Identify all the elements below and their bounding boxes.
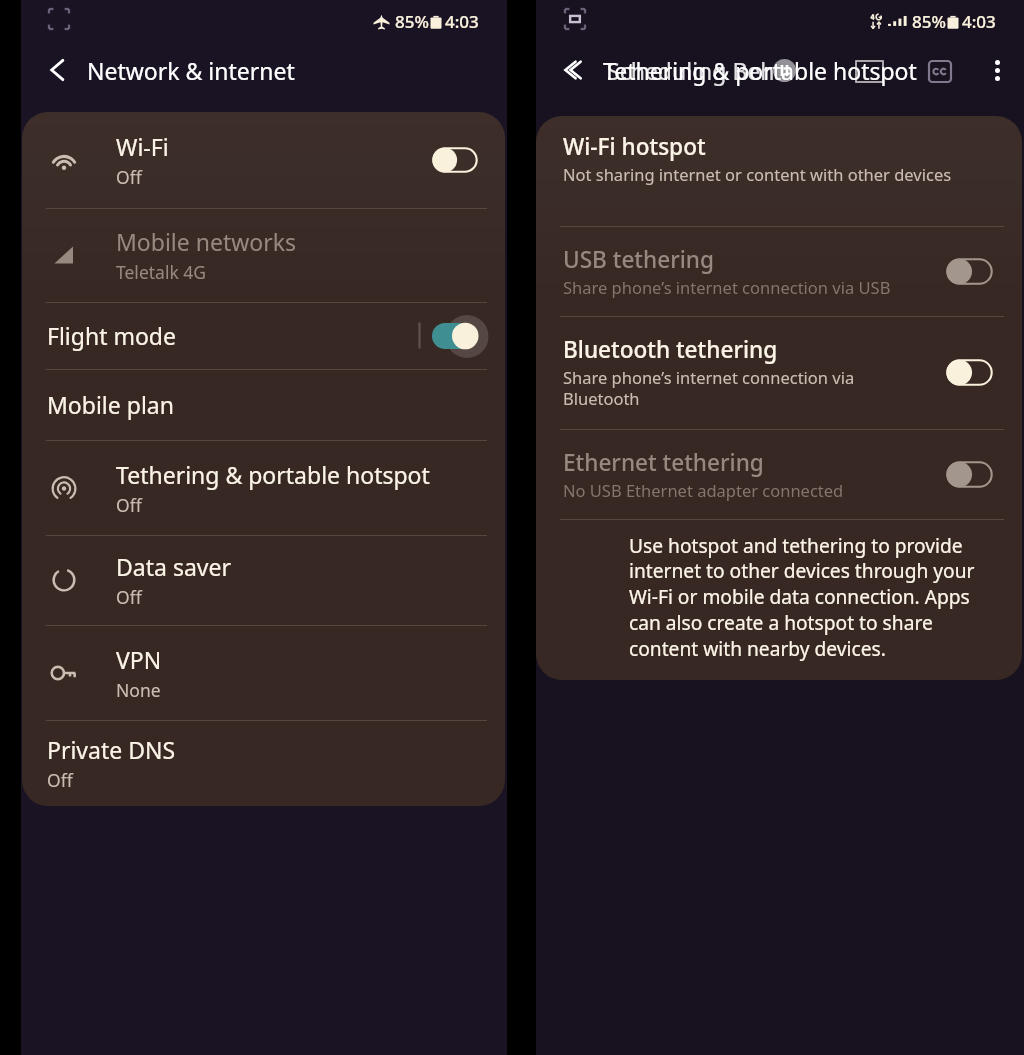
button[interactable]: Captions [928,60,952,83]
staticText: Wi-Fi [116,131,169,162]
staticText: Tethering & portable hotspot [603,55,917,86]
staticText: Flight mode [47,320,176,351]
button[interactable]: Back [550,48,594,92]
button[interactable]: Flight mode [22,302,505,369]
button[interactable]: Wi-Fi hotspot [536,116,1022,226]
staticText: Private DNS [47,734,176,765]
staticText: 4:03 [962,10,996,33]
button[interactable]: Ethernet tethering [536,429,1022,519]
staticText: Teletalk 4G [116,260,207,284]
button[interactable]: Back [35,48,79,92]
staticText: Off [116,493,142,517]
staticText: Mobile networks [116,226,297,257]
button[interactable]: Ethernet tethering switch [941,429,1001,519]
staticText: Bluetooth tethering [563,334,778,365]
button[interactable]: Pause [773,59,796,82]
staticText: Use hotspot and tethering to provide int… [629,532,975,662]
staticText: Share phone’s internet connection via Bl… [563,366,855,410]
staticText: Mobile plan [47,389,174,420]
staticText: 4:03 [445,10,479,33]
staticText: Off [116,585,142,609]
staticText: No USB Ethernet adapter connected [563,479,844,501]
staticText: None [116,678,161,702]
staticText: Data saver [116,551,231,582]
button[interactable]: Tethering & portable hotspot [22,440,505,535]
staticText: USB tethering [563,244,714,275]
staticText: 85% [395,10,429,33]
button[interactable]: More options [980,48,1014,92]
staticText: Not sharing internet or content with oth… [563,163,952,185]
button[interactable]: Flight mode switch [418,302,493,369]
button[interactable]: Data saver [22,535,505,625]
button[interactable]: VPN [22,625,505,720]
staticText: Off [116,165,142,189]
button[interactable]: Mobile networks [22,208,505,302]
staticText: Tethering & portable hotspot [116,459,430,490]
staticText: VPN [116,644,162,675]
button[interactable]: Bluetooth tethering [536,316,1022,429]
button[interactable]: Bluetooth tethering switch [941,316,1001,429]
button[interactable]: USB tethering [536,226,1022,316]
staticText: Scheduling Beh [607,55,775,86]
staticText: Off [47,768,73,792]
staticText: 85% [912,10,946,33]
button[interactable]: USB tethering switch [941,226,1001,316]
button[interactable]: Mobile plan [22,369,505,440]
staticText: Share phone’s internet connection via US… [563,276,891,298]
staticText: Ethernet tethering [563,447,764,478]
button[interactable]: Wi-Fi [22,112,505,208]
staticText: Network & internet [87,55,295,86]
button[interactable]: Private DNS [22,720,505,806]
staticText: Wi-Fi hotspot [563,131,706,162]
button[interactable]: Wi-Fi switch [418,112,493,208]
